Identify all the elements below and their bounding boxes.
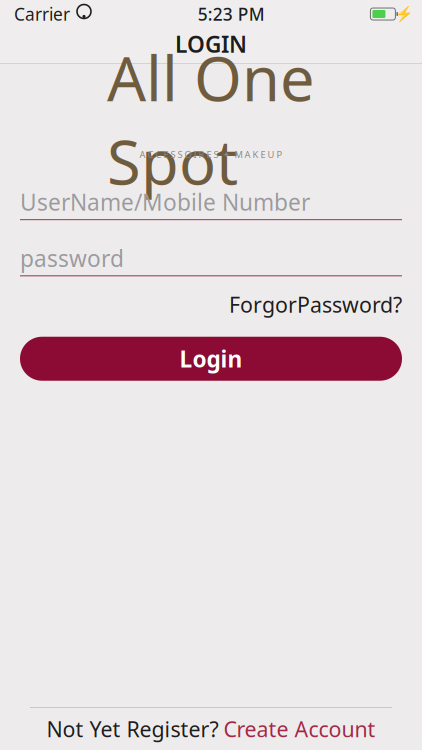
staticText: password: [20, 243, 124, 273]
staticText: ⚡: [394, 6, 412, 22]
button[interactable]: Not Yet Register?: [0, 708, 422, 750]
staticText: 5:23 PM: [198, 2, 265, 25]
button[interactable]: ForgorPassword?: [229, 286, 402, 323]
staticText: All One Spot: [107, 36, 315, 203]
staticText: A C C E S S O I R E S ✦ M A K E U P: [139, 148, 282, 161]
staticText: ForgorPassword?: [229, 290, 402, 319]
staticText: Login: [179, 344, 242, 374]
staticText: Carrier: [14, 2, 70, 25]
staticText: Create Account: [223, 715, 375, 743]
button[interactable]: Login: [20, 337, 402, 381]
staticText: UserName/Mobile Number: [20, 187, 310, 217]
staticText: Not Yet Register?: [46, 715, 218, 743]
staticText: LOGIN: [175, 29, 247, 59]
